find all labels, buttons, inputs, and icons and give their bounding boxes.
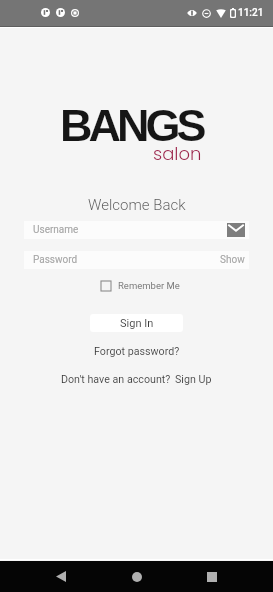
staticText: Show xyxy=(220,254,245,266)
staticText: BANGS xyxy=(60,100,203,150)
button[interactable]: Username xyxy=(24,221,249,239)
staticText: 11:21 xyxy=(238,7,264,19)
button[interactable]: Back xyxy=(43,561,78,592)
staticText: salon xyxy=(153,141,202,166)
staticText: Sign In xyxy=(120,317,154,330)
button[interactable]: Forgot password? xyxy=(94,345,180,358)
staticText: Welcome Back xyxy=(88,196,186,214)
staticText: Remember Me xyxy=(118,280,180,291)
staticText: Don't have an account? xyxy=(61,373,171,386)
button[interactable]: Remember Me xyxy=(101,280,180,291)
staticText: Password xyxy=(33,254,78,266)
staticText: Username xyxy=(33,224,79,236)
staticText: Forgot password? xyxy=(94,345,180,358)
button[interactable]: Sign In xyxy=(90,314,183,332)
button[interactable]: Password xyxy=(24,251,249,269)
button[interactable]: Home xyxy=(119,561,154,592)
staticText: Sign Up xyxy=(175,373,212,386)
button[interactable]: Recent apps xyxy=(194,561,229,592)
button[interactable]: Show xyxy=(220,254,245,266)
button[interactable]: Sign Up xyxy=(175,373,212,386)
